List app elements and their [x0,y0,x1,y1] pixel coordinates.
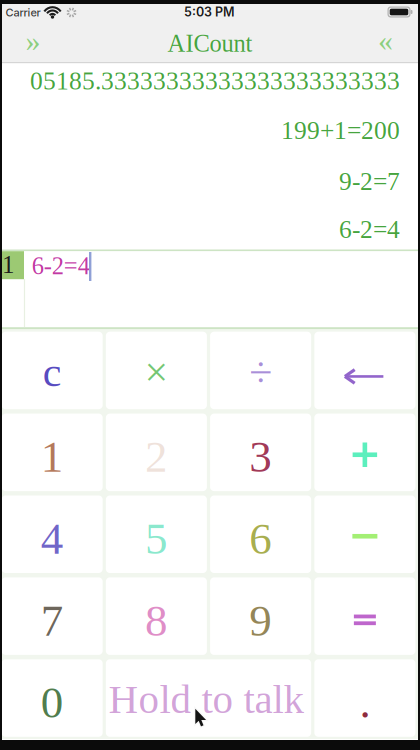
button[interactable]: 0 [2,659,103,737]
button[interactable]: c [2,332,103,409]
button[interactable]: . [314,659,415,737]
button[interactable]: 4 [2,495,103,573]
staticText: 5:03 PM [184,4,235,19]
button[interactable]: 7 [2,577,103,655]
button[interactable]: − [314,495,415,573]
button[interactable]: × [106,332,207,409]
staticText: Carrier [5,6,40,19]
staticText: 05185.33333333333333333333333 [30,67,400,95]
staticText: AICount [167,30,252,57]
staticText: 3 [249,432,272,481]
staticText: 9 [249,595,272,645]
button[interactable]: 3 [210,414,311,491]
button[interactable]: 6 [210,495,311,573]
staticText: × [144,349,168,395]
button[interactable]: 2 [106,414,207,491]
staticText: » [25,24,40,58]
button[interactable]: 8 [106,577,207,655]
staticText: 199+1=200 [281,116,400,145]
button[interactable]: 1 [2,414,103,491]
staticText: c [43,349,62,395]
staticText: ÷ [249,349,272,395]
staticText: 6-2=4 [339,215,400,244]
staticText: 0 [41,677,64,727]
button[interactable]: Settings [363,22,407,58]
staticText: 5 [145,514,168,563]
staticText: 9-2=7 [339,167,400,196]
button[interactable]: + [314,414,415,491]
staticText: 2 [145,432,168,481]
staticText: 6-2=4 [32,252,90,279]
button[interactable]: Delete [314,332,415,409]
staticText: 4 [41,514,64,563]
staticText: 1 [2,251,15,278]
button[interactable]: ÷ [210,332,311,409]
staticText: 8 [145,595,168,645]
button[interactable]: Hold to talk [106,659,311,737]
button[interactable]: 9 [210,577,311,655]
button[interactable]: History [11,23,55,59]
staticText: . [359,677,370,727]
button[interactable]: = [314,577,415,655]
staticText: Hold to talk [108,676,304,722]
staticText: 7 [41,595,64,645]
staticText: « [378,24,393,57]
button[interactable]: 5 [106,495,207,573]
staticText: 1 [41,432,64,481]
staticText: 6 [249,514,272,563]
